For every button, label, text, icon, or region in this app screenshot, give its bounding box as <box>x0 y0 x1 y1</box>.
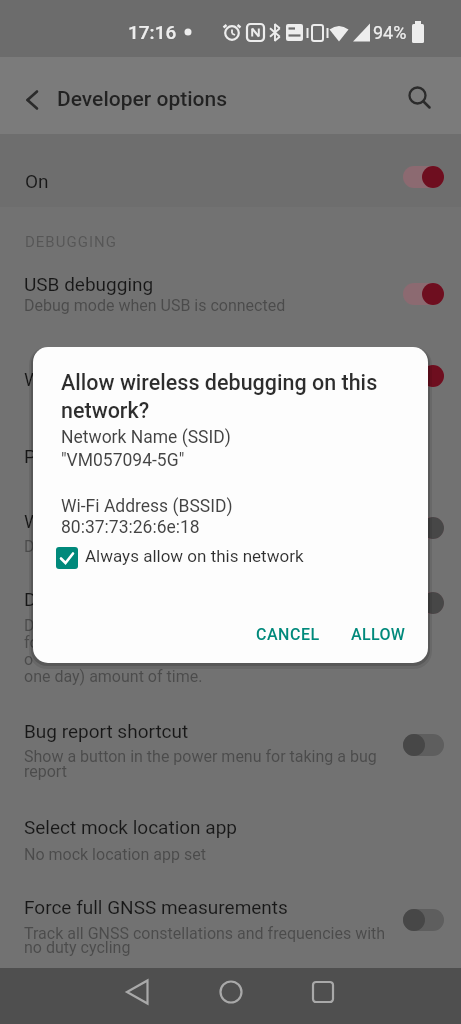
button[interactable] <box>272 968 352 1024</box>
staticText: Wi-Fi Address (BSSID) <box>61 496 233 517</box>
staticText: Allow wireless debugging on this <box>61 370 378 395</box>
button[interactable] <box>0 810 461 872</box>
button[interactable] <box>403 517 444 539</box>
button[interactable]: CANCEL <box>243 611 325 651</box>
staticText: USB debugging <box>24 273 154 295</box>
staticText: 94% <box>373 22 407 43</box>
button[interactable] <box>403 283 444 305</box>
staticText: report <box>24 762 67 781</box>
button[interactable] <box>403 166 444 188</box>
button[interactable] <box>0 262 461 320</box>
staticText: no duty cycling <box>24 938 131 957</box>
staticText: Disables automatic revocation of adb <box>24 616 289 635</box>
staticText: DEBUGGING <box>25 233 117 251</box>
staticText: CANCEL <box>256 625 320 644</box>
staticText: 17:16 <box>128 21 177 43</box>
button[interactable] <box>403 734 444 756</box>
button[interactable] <box>403 592 444 614</box>
staticText: Wireless debugging <box>24 368 190 390</box>
button[interactable] <box>110 968 190 1024</box>
staticText: o <box>24 650 34 669</box>
staticText: Always allow on this network <box>85 546 304 566</box>
button[interactable] <box>12 82 48 118</box>
button[interactable] <box>403 365 444 387</box>
staticText: Network Name (SSID) <box>61 427 231 448</box>
staticText: Debug mode when USB is connected <box>24 296 286 315</box>
staticText: network? <box>61 398 150 423</box>
staticText: Wait for debugger <box>24 510 175 532</box>
button[interactable] <box>0 712 461 784</box>
staticText: Track all GNSS constellations and freque… <box>24 924 386 943</box>
staticText: Force full GNSS measurements <box>24 896 288 918</box>
staticText: Pair device with pairing code <box>24 445 266 467</box>
staticText: Debugged application waits for debugger <box>24 537 317 556</box>
staticText: for systems that have not reconnected <box>24 633 298 652</box>
button[interactable] <box>400 78 440 118</box>
button[interactable] <box>0 890 461 962</box>
button[interactable]: ALLOW <box>339 611 423 651</box>
staticText: Select mock location app <box>24 816 237 838</box>
staticText: On <box>25 170 49 192</box>
staticText: Developer options <box>57 87 228 112</box>
staticText: Show a button in the power menu for taki… <box>24 747 377 766</box>
staticText: ALLOW <box>351 625 406 644</box>
staticText: 80:37:73:26:6e:18 <box>61 517 200 538</box>
button[interactable] <box>0 140 461 202</box>
staticText: No mock location app set <box>24 845 206 864</box>
button[interactable] <box>56 547 78 569</box>
staticText: "VM057094-5G" <box>61 450 185 471</box>
staticText: Disable adb authorization timeout <box>24 588 309 610</box>
staticText: Bug report shortcut <box>24 720 189 742</box>
staticText: one day) amount of time. <box>24 667 203 686</box>
button[interactable] <box>403 909 444 931</box>
button[interactable] <box>191 968 271 1024</box>
